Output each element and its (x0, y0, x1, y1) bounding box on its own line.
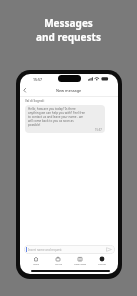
staticText: Insert name and request (28, 248, 62, 252)
staticText: New message (56, 88, 82, 93)
button[interactable]: Threads (91, 256, 113, 269)
button[interactable]: Home (25, 256, 47, 269)
staticText: 15:57 (33, 77, 42, 82)
button[interactable]: Travel guide (69, 256, 91, 269)
staticText: Home (33, 263, 39, 266)
staticText: anything we can help you with? Feel free (28, 111, 86, 115)
button[interactable]: My trip (47, 256, 69, 269)
button[interactable]: Insert name and request (24, 245, 115, 254)
staticText: and requests (36, 30, 101, 44)
staticText: Threads (98, 263, 106, 266)
staticText: Messages (44, 16, 93, 30)
staticText: possible! (28, 123, 41, 127)
staticText: My trip (55, 263, 62, 266)
staticText: to contact us and leave your name - we (28, 115, 84, 119)
staticText: 15:57 (95, 128, 102, 132)
staticText: Travel guide (74, 263, 86, 266)
staticText: will come back to you as soon as (28, 119, 74, 123)
staticText: Val di Sognoli (25, 99, 45, 103)
staticText: Hello, how are you today? Is there (28, 107, 76, 111)
